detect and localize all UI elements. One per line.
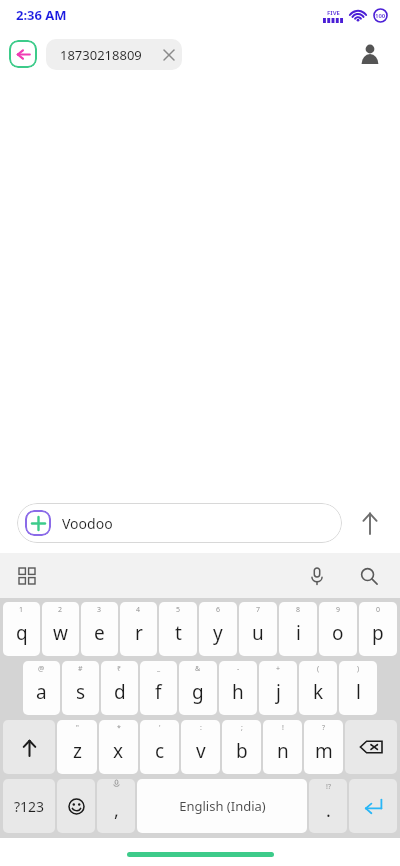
button[interactable]: _ (140, 661, 177, 715)
staticText: i (296, 620, 301, 646)
button[interactable]: Clear (156, 42, 182, 68)
button[interactable]: Backspace (345, 720, 397, 774)
staticText: , (114, 798, 119, 823)
button[interactable]: , (97, 779, 135, 833)
button[interactable]: @ (23, 661, 60, 715)
staticText: w (53, 620, 68, 646)
staticText: k (313, 679, 324, 705)
button[interactable]: Profile (354, 38, 386, 70)
staticText: 2 (58, 605, 63, 615)
button[interactable]: 6 (199, 602, 237, 656)
button[interactable]: * (99, 720, 138, 774)
staticText: 100 (375, 12, 386, 20)
button[interactable]: Clipboard (10, 559, 44, 593)
staticText: v (196, 738, 206, 764)
staticText: b (236, 738, 248, 764)
staticText: ) (357, 664, 360, 674)
button[interactable]: 9 (319, 602, 357, 656)
button[interactable]: Add attachment (17, 503, 342, 543)
staticText: 18730218809 (60, 46, 142, 64)
staticText: - (237, 664, 240, 674)
staticText: o (332, 620, 344, 646)
button[interactable]: + (259, 661, 297, 715)
button[interactable]: Back (9, 40, 37, 68)
staticText: s (76, 679, 86, 705)
staticText: h (232, 679, 244, 705)
staticText: t (175, 620, 182, 646)
staticText: FIVE (327, 9, 340, 17)
button[interactable]: 5 (159, 602, 197, 656)
staticText: @ (38, 664, 45, 674)
button[interactable]: 8 (279, 602, 317, 656)
staticText: ; (241, 723, 243, 733)
staticText: 4 (136, 605, 141, 615)
staticText: a (36, 679, 47, 705)
button[interactable]: 0 (359, 602, 397, 656)
button[interactable]: ₹ (101, 661, 138, 715)
staticText: 0 (376, 605, 381, 615)
button[interactable]: - (219, 661, 257, 715)
staticText: ? (322, 723, 326, 733)
button[interactable]: Send (348, 501, 392, 545)
button[interactable]: Emoji (57, 779, 95, 833)
staticText: y (213, 620, 223, 646)
button[interactable]: 18730218809 (46, 39, 182, 70)
button[interactable]: 4 (120, 602, 157, 656)
button[interactable]: & (179, 661, 217, 715)
staticText: 8 (296, 605, 301, 615)
staticText: r (135, 620, 143, 646)
staticText: q (16, 620, 28, 646)
staticText: c (155, 738, 165, 764)
staticText: e (94, 620, 105, 646)
button[interactable]: " (57, 720, 97, 774)
staticText: 7 (256, 605, 261, 615)
button[interactable]: English (India) (137, 779, 307, 833)
button[interactable]: ?123 (3, 779, 55, 833)
staticText: ( (317, 664, 320, 674)
staticText: 2:36 AM (16, 6, 67, 24)
button[interactable]: Voice input (300, 559, 334, 593)
staticText: ! (282, 723, 284, 733)
button[interactable]: Shift (3, 720, 55, 774)
button[interactable]: Enter (349, 779, 397, 833)
staticText: d (114, 679, 126, 705)
staticText: ' (159, 723, 161, 733)
button[interactable]: ! (263, 720, 302, 774)
button[interactable]: : (181, 720, 220, 774)
staticText: ₹ (117, 664, 122, 674)
button[interactable]: 1 (3, 602, 40, 656)
button[interactable]: # (62, 661, 99, 715)
staticText: English (India) (179, 797, 266, 815)
button[interactable]: 7 (239, 602, 277, 656)
staticText: . (326, 798, 331, 823)
button[interactable]: Search (352, 559, 386, 593)
button[interactable]: !? (309, 779, 347, 833)
staticText: z (73, 738, 82, 764)
staticText: l (356, 679, 361, 705)
button[interactable]: Add attachment (25, 510, 51, 536)
staticText: _ (157, 664, 161, 674)
staticText: * (117, 723, 121, 733)
staticText: f (155, 679, 162, 705)
staticText: ?123 (14, 797, 45, 816)
staticText: 9 (336, 605, 341, 615)
button[interactable]: 2 (42, 602, 79, 656)
staticText: " (76, 723, 79, 733)
staticText: & (195, 664, 201, 674)
staticText: 6 (216, 605, 221, 615)
staticText: + (276, 664, 281, 674)
button[interactable]: ) (339, 661, 377, 715)
staticText: p (372, 620, 384, 646)
staticText: !? (326, 782, 331, 792)
button[interactable]: 3 (81, 602, 118, 656)
button[interactable]: ' (140, 720, 179, 774)
staticText: 3 (97, 605, 102, 615)
staticText: u (252, 620, 264, 646)
staticText: j (276, 679, 281, 705)
button[interactable]: ; (222, 720, 261, 774)
button[interactable]: ? (304, 720, 343, 774)
button[interactable]: ( (299, 661, 337, 715)
staticText: Voodoo (62, 514, 113, 533)
staticText: g (192, 679, 204, 705)
staticText: n (277, 738, 289, 764)
